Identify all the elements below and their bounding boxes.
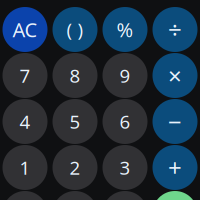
button[interactable]: 0 xyxy=(0,191,50,200)
button[interactable]: + xyxy=(150,145,200,190)
staticText: 2 xyxy=(69,155,80,180)
staticText: 6 xyxy=(119,109,130,134)
staticText: 1 xyxy=(19,155,30,180)
staticText: 9 xyxy=(119,63,130,88)
button[interactable]: = xyxy=(150,191,200,200)
button[interactable]: 7 xyxy=(0,53,50,98)
button[interactable]: AC xyxy=(0,7,50,52)
button[interactable]: × xyxy=(150,53,200,98)
button[interactable]: 3 xyxy=(100,145,150,190)
staticText: 7 xyxy=(19,63,30,88)
staticText: ( ) xyxy=(66,17,83,42)
button[interactable]: 9 xyxy=(100,53,150,98)
staticText: 8 xyxy=(69,63,80,88)
button[interactable]: ⌫ xyxy=(100,191,150,200)
button[interactable]: 5 xyxy=(50,99,100,144)
button[interactable]: ÷ xyxy=(150,7,200,52)
button[interactable]: − xyxy=(150,99,200,144)
staticText: − xyxy=(168,106,182,137)
staticText: 5 xyxy=(69,109,80,134)
button[interactable]: % xyxy=(100,7,150,52)
staticText: ÷ xyxy=(168,14,182,45)
button[interactable]: . xyxy=(50,191,100,200)
button[interactable]: 2 xyxy=(50,145,100,190)
staticText: 4 xyxy=(19,109,30,134)
staticText: 3 xyxy=(119,155,130,180)
staticText: + xyxy=(168,152,182,183)
staticText: × xyxy=(168,60,182,91)
button[interactable]: 6 xyxy=(100,99,150,144)
staticText: AC xyxy=(12,16,37,43)
button[interactable]: 1 xyxy=(0,145,50,190)
button[interactable]: ( ) xyxy=(50,7,100,52)
staticText: % xyxy=(116,16,133,43)
button[interactable]: 8 xyxy=(50,53,100,98)
button[interactable]: 4 xyxy=(0,99,50,144)
